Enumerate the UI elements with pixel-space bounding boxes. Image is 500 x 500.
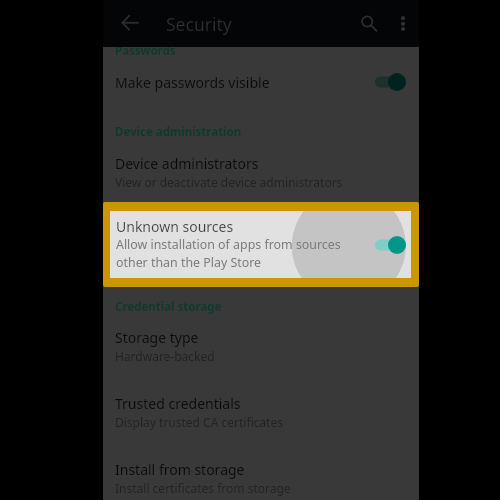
button[interactable]: More options — [381, 2, 425, 46]
button[interactable]: Navigate up — [108, 1, 152, 45]
button[interactable]: Make passwords visible — [103, 63, 419, 101]
staticText: Hardware-backed — [115, 348, 215, 364]
staticText: Make passwords visible — [115, 73, 270, 92]
button[interactable]: Trusted credentials — [103, 392, 419, 431]
button[interactable]: Device administrators — [103, 152, 419, 191]
staticText: Security — [166, 12, 232, 36]
staticText: Install from storage — [115, 460, 245, 479]
staticText: Device administration — [115, 124, 242, 140]
staticText: Storage type — [115, 328, 199, 347]
staticText: Trusted credentials — [115, 394, 241, 413]
staticText: Passwords — [115, 43, 176, 59]
staticText: Install certificates from storage — [115, 480, 291, 496]
button[interactable]: Unknown sources — [103, 202, 419, 287]
button[interactable]: Install from storage — [103, 458, 419, 497]
staticText: View or deactivate device administrators — [115, 174, 343, 190]
staticText: Device administrators — [115, 154, 259, 173]
staticText: Unknown sources — [116, 217, 234, 236]
button[interactable]: Search — [347, 2, 391, 46]
button[interactable]: Storage type — [103, 326, 419, 365]
staticText: Allow installation of apps from sources … — [116, 236, 341, 271]
staticText: Display trusted CA certificates — [115, 414, 283, 430]
staticText: Credential storage — [115, 299, 222, 315]
